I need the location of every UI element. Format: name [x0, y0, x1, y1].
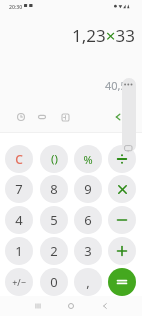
- button[interactable]: %: [74, 145, 102, 173]
- button[interactable]: Equals: [108, 268, 136, 296]
- button[interactable]: Subtract: [108, 206, 136, 234]
- staticText: ,: [86, 273, 90, 291]
- button[interactable]: Multiply: [108, 175, 136, 203]
- staticText: +/−: [12, 276, 26, 288]
- staticText: 1,23×33: [72, 24, 135, 47]
- staticText: 8: [50, 180, 58, 198]
- button[interactable]: 5: [40, 206, 68, 234]
- button[interactable]: 9: [74, 175, 102, 203]
- staticText: (): [51, 151, 58, 167]
- staticText: 0: [50, 273, 58, 291]
- staticText: 40,59: [105, 78, 134, 93]
- button[interactable]: ,: [74, 268, 102, 296]
- staticText: C: [15, 151, 23, 167]
- button[interactable]: Back: [97, 298, 113, 314]
- button[interactable]: History: [13, 109, 29, 125]
- button[interactable]: 8: [40, 175, 68, 203]
- staticText: %: [83, 152, 93, 167]
- staticText: 5: [50, 211, 58, 229]
- button[interactable]: Backspace: [110, 109, 126, 125]
- button[interactable]: C: [5, 145, 33, 173]
- staticText: 3: [84, 242, 92, 260]
- button[interactable]: Home: [63, 298, 79, 314]
- staticText: 6: [84, 211, 92, 229]
- staticText: 1: [15, 242, 23, 260]
- staticText: 7: [15, 180, 23, 198]
- button[interactable]: 2: [40, 237, 68, 265]
- button[interactable]: (): [40, 145, 68, 173]
- staticText: 4: [15, 211, 23, 229]
- button[interactable]: +/−: [5, 268, 33, 296]
- button[interactable]: 4: [5, 206, 33, 234]
- staticText: 9: [84, 180, 92, 198]
- button[interactable]: Memory: [34, 109, 50, 125]
- button[interactable]: Add: [108, 237, 136, 265]
- staticText: 20:30: [9, 3, 23, 10]
- staticText: 2: [50, 242, 58, 260]
- button[interactable]: 7: [5, 175, 33, 203]
- button[interactable]: 0: [40, 268, 68, 296]
- button[interactable]: Divide: [108, 145, 136, 173]
- button[interactable]: 3: [74, 237, 102, 265]
- button[interactable]: 6: [74, 206, 102, 234]
- button[interactable]: Recents: [30, 298, 46, 314]
- button[interactable]: Unit converter: [57, 109, 73, 125]
- button[interactable]: 1: [5, 237, 33, 265]
